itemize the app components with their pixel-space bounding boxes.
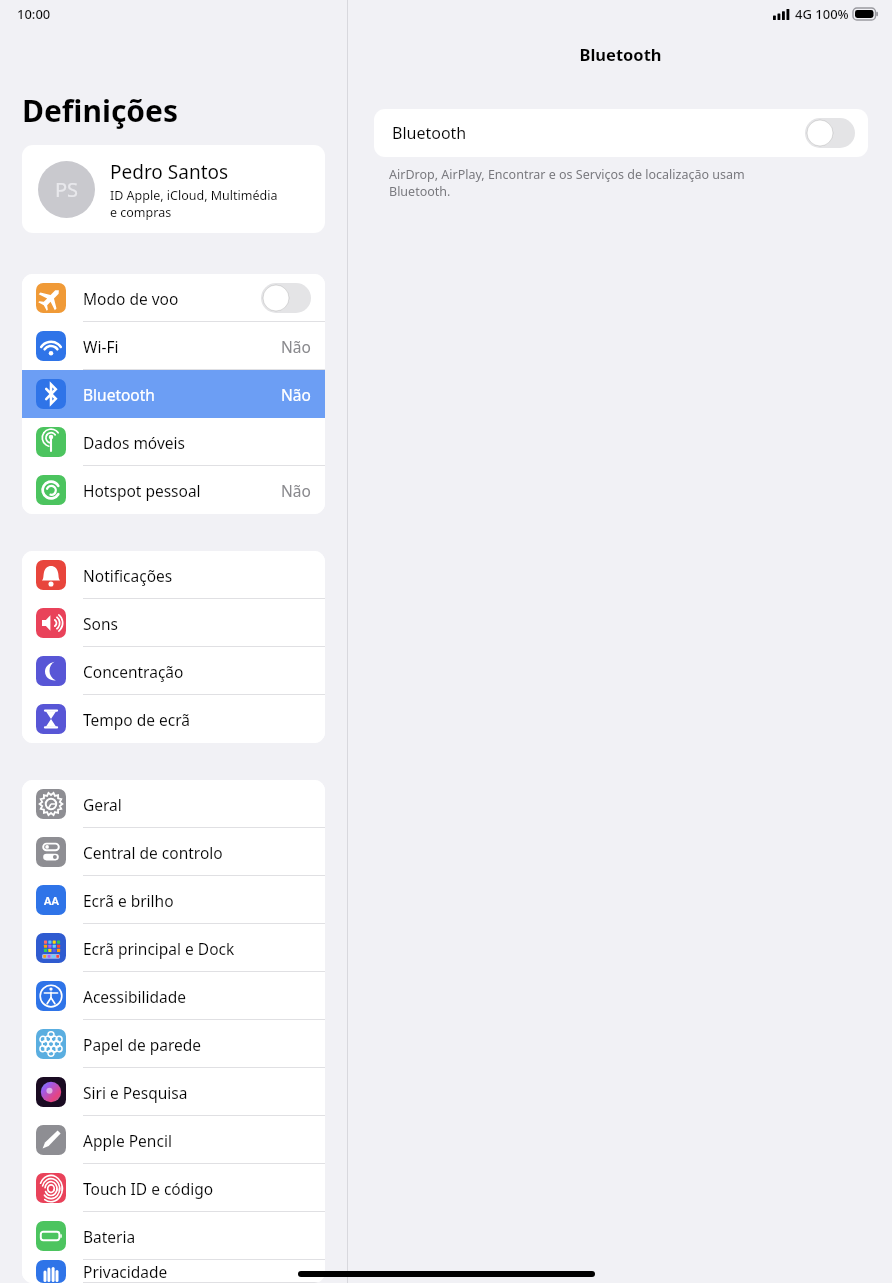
staticText: Não [281, 384, 311, 405]
staticText: Apple Pencil [83, 1130, 172, 1151]
staticText: Bluetooth [579, 43, 662, 65]
staticText: Hotspot pessoal [83, 480, 201, 501]
button[interactable]: PS [22, 145, 325, 233]
staticText: Modo de voo [83, 288, 179, 309]
button[interactable]: Bluetooth [374, 109, 868, 157]
staticText: Bluetooth [392, 122, 467, 144]
button[interactable]: Sons [22, 599, 325, 647]
staticText: Wi-Fi [83, 336, 119, 357]
staticText: Ecrã principal e Dock [83, 938, 235, 959]
button[interactable]: Apple Pencil [22, 1116, 325, 1164]
button[interactable]: Tempo de ecrã [22, 695, 325, 743]
button[interactable]: Concentração [22, 647, 325, 695]
staticText: Definições [22, 90, 179, 131]
staticText: Geral [83, 794, 122, 815]
button[interactable]: Dados móveis [22, 418, 325, 466]
button[interactable]: Modo de voo [22, 274, 325, 322]
button[interactable]: Acessibilidade [22, 972, 325, 1020]
staticText: Siri e Pesquisa [83, 1082, 188, 1103]
staticText: PS [55, 176, 79, 203]
staticText: Concentração [83, 661, 184, 682]
staticText: Notificações [83, 565, 173, 586]
staticText: Bateria [83, 1226, 136, 1247]
button[interactable]: Geral [22, 780, 325, 828]
staticText: Pedro Santos [110, 159, 229, 185]
staticText: Bluetooth [83, 384, 155, 405]
button[interactable]: Hotspot pessoal [22, 466, 325, 514]
button[interactable]: Toggle [261, 283, 311, 313]
button[interactable]: Siri e Pesquisa [22, 1068, 325, 1116]
staticText: AA [44, 893, 59, 908]
button[interactable]: Bluetooth [22, 370, 325, 418]
staticText: ID Apple, iCloud, Multimédia e compras [110, 187, 278, 220]
staticText: Ecrã e brilho [83, 890, 174, 911]
staticText: Tempo de ecrã [83, 709, 190, 730]
button[interactable]: Toggle [805, 118, 855, 148]
button[interactable]: Ecrã principal e Dock [22, 924, 325, 972]
button[interactable]: Privacidade [22, 1260, 325, 1283]
staticText: 4G 100% [795, 5, 849, 23]
staticText: Privacidade [83, 1261, 168, 1282]
staticText: AirDrop, AirPlay, Encontrar e os Serviço… [389, 166, 745, 200]
button[interactable]: Touch ID e código [22, 1164, 325, 1212]
button[interactable]: Notificações [22, 551, 325, 599]
staticText: Dados móveis [83, 432, 185, 453]
staticText: Sons [83, 613, 118, 634]
staticText: Não [281, 336, 311, 357]
button[interactable]: Wi-Fi [22, 322, 325, 370]
button[interactable]: Central de controlo [22, 828, 325, 876]
button[interactable]: Bateria [22, 1212, 325, 1260]
staticText: Central de controlo [83, 842, 223, 863]
button[interactable]: AA [22, 876, 325, 924]
staticText: 10:00 [17, 5, 51, 23]
staticText: Não [281, 480, 311, 501]
staticText: Touch ID e código [83, 1178, 214, 1199]
staticText: Papel de parede [83, 1034, 202, 1055]
staticText: Acessibilidade [83, 986, 186, 1007]
button[interactable]: Papel de parede [22, 1020, 325, 1068]
